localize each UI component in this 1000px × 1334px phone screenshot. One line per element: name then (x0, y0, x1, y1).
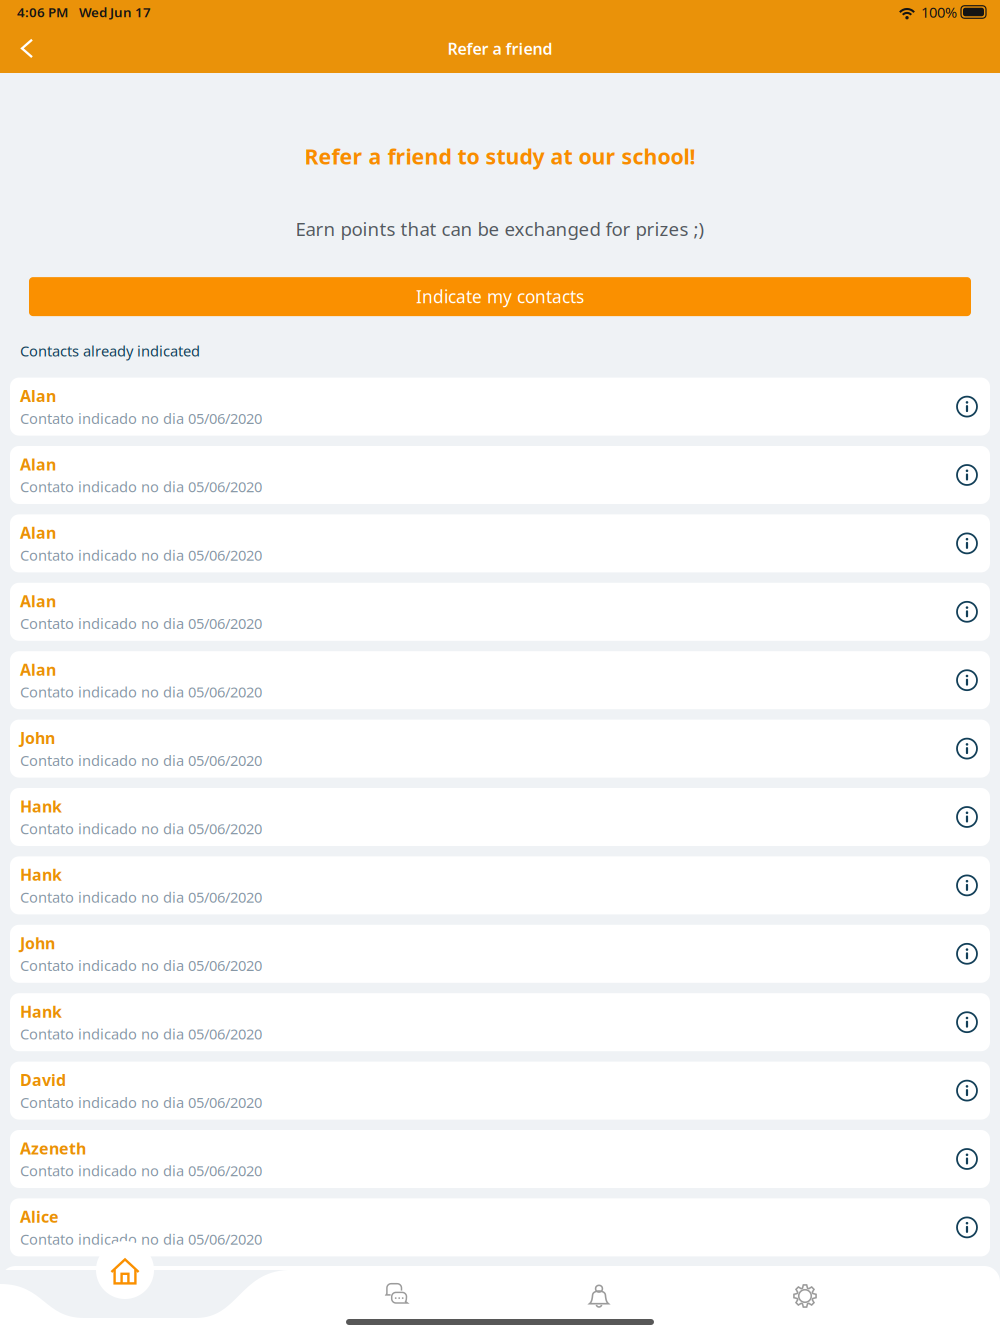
staticText: Contato indicado no dia 05/06/2020 (20, 1161, 262, 1180)
button[interactable]: Azeneth (10, 1130, 990, 1188)
staticText: Alice (20, 1206, 59, 1227)
staticText: Contato indicado no dia 05/06/2020 (20, 682, 262, 702)
staticText: 100% (921, 2, 957, 22)
button[interactable]: Alan (10, 514, 990, 572)
staticText: Contato indicado no dia 05/06/2020 (20, 887, 262, 907)
staticText: Contato indicado no dia 05/06/2020 (20, 750, 262, 770)
staticText: Azeneth (20, 1138, 86, 1159)
button[interactable]: Indicate my contacts (29, 277, 971, 316)
button[interactable]: Settings (773, 1273, 837, 1319)
staticText: Alan (20, 454, 56, 475)
button[interactable]: Messages (365, 1273, 429, 1319)
staticText: Alan (20, 590, 56, 612)
staticText: Refer a friend to study at our school! (304, 142, 695, 170)
button[interactable]: John (10, 925, 990, 983)
button[interactable]: Alan (10, 378, 990, 436)
staticText: David (20, 1069, 66, 1090)
staticText: Contato indicado no dia 05/06/2020 (20, 477, 262, 496)
staticText: Indicate my contacts (416, 285, 584, 308)
button[interactable]: Alan (10, 446, 990, 504)
staticText: Refer a friend (447, 38, 552, 59)
button[interactable]: Back (0, 24, 54, 73)
staticText: Hank (20, 1001, 62, 1022)
staticText: Contato indicado no dia 05/06/2020 (20, 1229, 262, 1249)
staticText: Contacts already indicated (20, 341, 200, 361)
staticText: Contato indicado no dia 05/06/2020 (20, 1024, 262, 1044)
staticText: John (20, 932, 55, 954)
staticText: Alan (20, 385, 56, 406)
staticText: Contato indicado no dia 05/06/2020 (20, 956, 262, 975)
staticText: 4:06 PM (17, 3, 68, 21)
button[interactable]: Alan (10, 651, 990, 709)
button[interactable]: Alan (10, 583, 990, 641)
button[interactable]: Alice (10, 1198, 990, 1256)
staticText: Contato indicado no dia 05/06/2020 (20, 614, 262, 633)
staticText: Contato indicado no dia 05/06/2020 (20, 408, 262, 428)
button[interactable]: Hank (10, 788, 990, 846)
staticText: Contato indicado no dia 05/06/2020 (20, 819, 262, 838)
staticText: Earn points that can be exchanged for pr… (295, 216, 704, 241)
button[interactable]: David (10, 1062, 990, 1120)
button[interactable]: Notifications (567, 1273, 631, 1319)
staticText: Contato indicado no dia 05/06/2020 (20, 545, 262, 565)
staticText: Hank (20, 796, 62, 817)
staticText: Contato indicado no dia 05/06/2020 (20, 1092, 262, 1112)
staticText: John (20, 727, 55, 748)
button[interactable]: Hank (10, 993, 990, 1051)
button[interactable]: Home (96, 1241, 154, 1299)
staticText: Wed Jun 17 (79, 3, 151, 21)
button[interactable]: Hank (10, 856, 990, 914)
staticText: Alan (20, 659, 56, 680)
staticText: Hank (20, 864, 62, 885)
button[interactable]: John (10, 720, 990, 778)
staticText: Alan (20, 522, 56, 543)
